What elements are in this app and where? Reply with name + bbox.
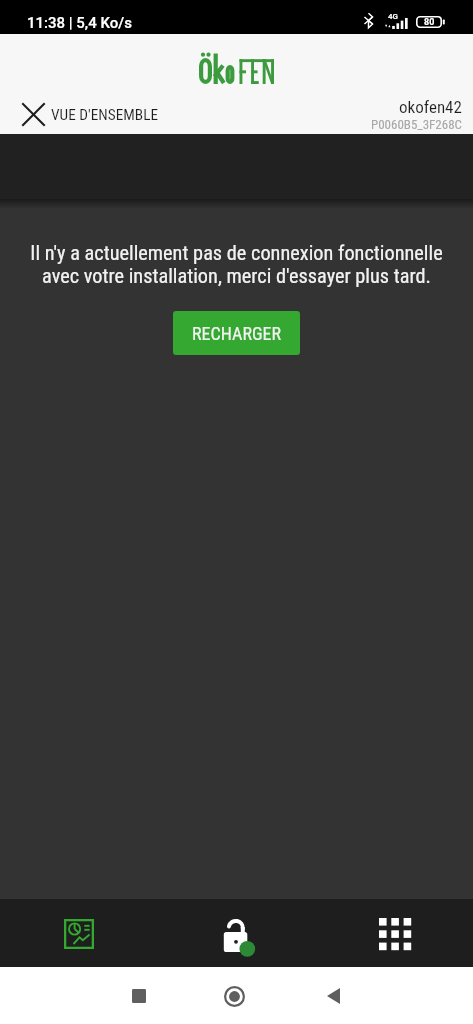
staticText: 4G [388,12,398,21]
button[interactable]: Recents [110,975,167,1017]
button[interactable]: RECHARGER [173,311,300,355]
button[interactable]: Home [206,975,263,1017]
other: Fermer [23,104,44,125]
staticText: 11:38 | 5,4 Ko/s [27,14,132,32]
staticText: okofen42 [399,97,462,117]
staticText: RECHARGER [192,323,282,344]
staticText: Il n'y a actuellement pas de connexion f… [14,241,459,288]
staticText: P0060B5_3F268C [371,117,462,132]
button[interactable]: Applications [315,899,473,967]
button[interactable]: Back [305,975,362,1017]
staticText: VUE D'ENSEMBLE [51,106,159,124]
staticText: 80 [424,17,435,28]
button[interactable]: Fermer [0,104,159,125]
button[interactable]: Vue d'ensemble [0,899,157,967]
button[interactable]: Connexion [157,899,315,967]
